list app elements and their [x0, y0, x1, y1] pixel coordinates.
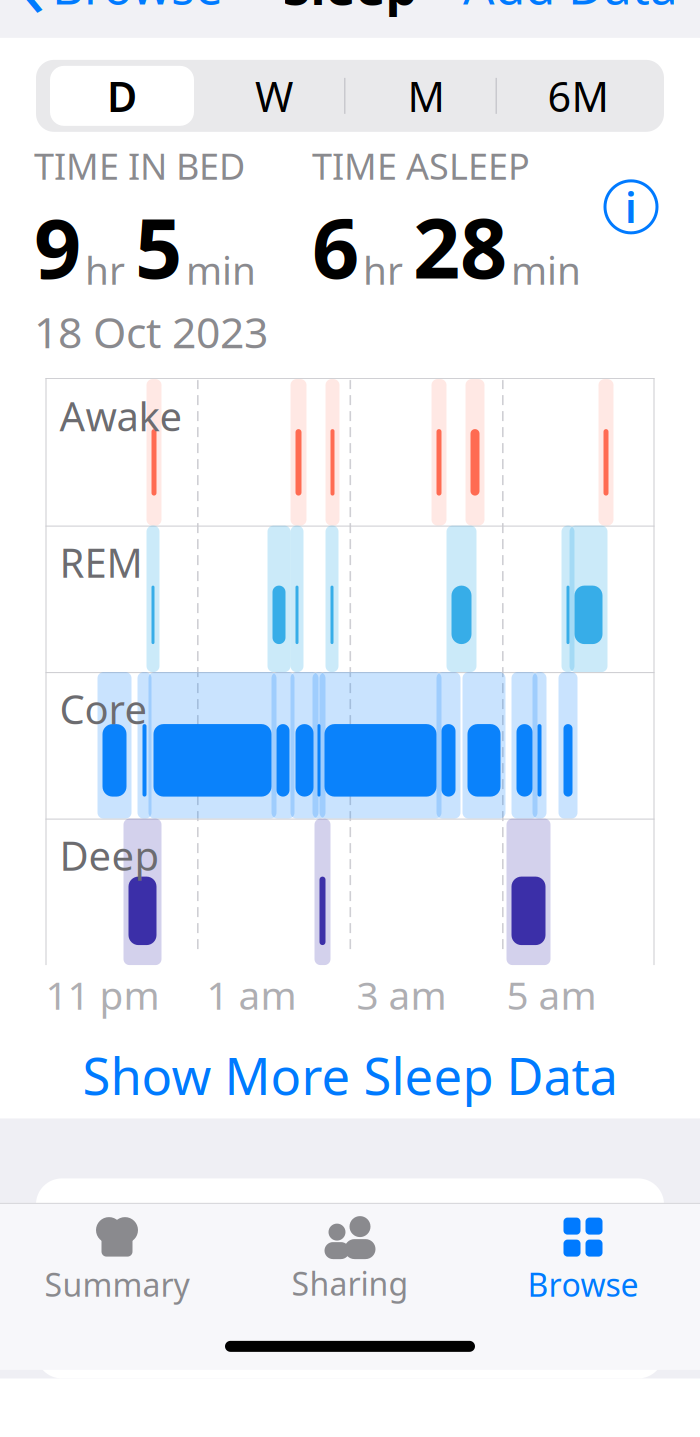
- staticText: TIME ASLEEP: [312, 142, 530, 190]
- button[interactable]: Customise Sleep Focus: [36, 1178, 664, 1378]
- button[interactable]: W: [198, 64, 350, 128]
- staticText: 3 am: [356, 969, 446, 1020]
- staticText: 28: [413, 192, 507, 301]
- staticText: Summary: [44, 1263, 189, 1306]
- staticText: Add Data: [463, 0, 678, 18]
- staticText: 11 pm: [45, 969, 159, 1020]
- button[interactable]: About sleep stages: [596, 172, 666, 242]
- staticText: min: [186, 244, 256, 295]
- button[interactable]: ‹: [0, 0, 223, 50]
- staticText: D: [107, 68, 137, 123]
- button[interactable]: Show More Sleep Data: [0, 1032, 700, 1118]
- staticText: i: [625, 179, 637, 234]
- button[interactable]: M: [350, 64, 502, 128]
- staticText: Sharing: [291, 1262, 408, 1305]
- staticText: Sleep: [282, 0, 417, 19]
- staticText: 6M: [547, 68, 608, 123]
- staticText: 1 am: [206, 969, 296, 1020]
- staticText: Core: [59, 682, 147, 735]
- button[interactable]: 6M: [502, 64, 654, 128]
- staticText: hr: [363, 244, 403, 295]
- button[interactable]: Sharing: [233, 1213, 466, 1307]
- button[interactable]: Add Data: [463, 0, 700, 28]
- staticText: 9: [34, 192, 81, 301]
- button[interactable]: Summary: [0, 1213, 233, 1307]
- staticText: Show More Sleep Data: [82, 1042, 617, 1109]
- staticText: 5 am: [506, 969, 596, 1020]
- staticText: ✕: [592, 1204, 634, 1262]
- button[interactable]: Browse: [466, 1213, 699, 1307]
- button[interactable]: D: [46, 64, 198, 128]
- staticText: Awake: [59, 389, 182, 442]
- staticText: Deep: [59, 829, 159, 882]
- staticText: Browse: [52, 0, 223, 18]
- staticText: TIME IN BED: [34, 142, 245, 190]
- staticText: W: [255, 68, 293, 123]
- staticText: M: [407, 68, 444, 123]
- staticText: 5: [135, 192, 182, 301]
- staticText: ‹: [20, 0, 46, 40]
- staticText: REM: [59, 536, 142, 589]
- staticText: min: [511, 244, 581, 295]
- staticText: Browse: [527, 1263, 638, 1306]
- staticText: hr: [85, 244, 125, 295]
- staticText: Customise Sleep Focus: [164, 1206, 466, 1348]
- staticText: 18 Oct 2023: [34, 303, 268, 360]
- staticText: 6: [312, 192, 359, 301]
